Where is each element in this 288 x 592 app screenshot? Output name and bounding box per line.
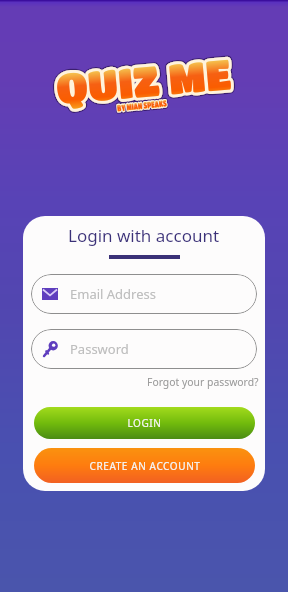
- button[interactable]: Email Address: [31, 274, 257, 314]
- button[interactable]: Password: [31, 329, 257, 369]
- staticText: CREATE AN ACCOUNT: [89, 459, 201, 473]
- staticText: LOGIN: [127, 416, 162, 430]
- staticText: QUIZ ME: [54, 48, 234, 112]
- staticText: BY MIAN SPEAKS: [117, 97, 167, 113]
- button[interactable]: CREATE AN ACCOUNT: [34, 448, 255, 483]
- staticText: Login with account: [68, 224, 220, 247]
- button[interactable]: LOGIN: [34, 407, 255, 439]
- staticText: QUIZ ME: [54, 48, 234, 112]
- staticText: QUIZ ME: [54, 48, 234, 112]
- staticText: Email Address: [70, 285, 156, 303]
- button[interactable]: Forgot your password?: [147, 375, 259, 389]
- staticText: Password: [70, 340, 129, 358]
- staticText: BY MIAN SPEAKS: [117, 97, 167, 113]
- staticText: BY MIAN SPEAKS: [117, 97, 167, 113]
